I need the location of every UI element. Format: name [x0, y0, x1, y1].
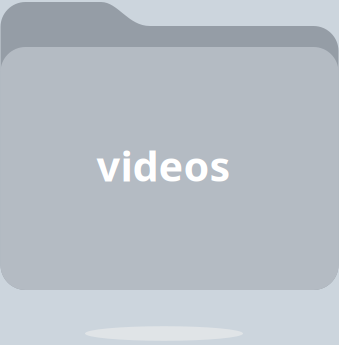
button[interactable]: videos — [0, 0, 339, 345]
staticText: videos — [96, 138, 230, 193]
